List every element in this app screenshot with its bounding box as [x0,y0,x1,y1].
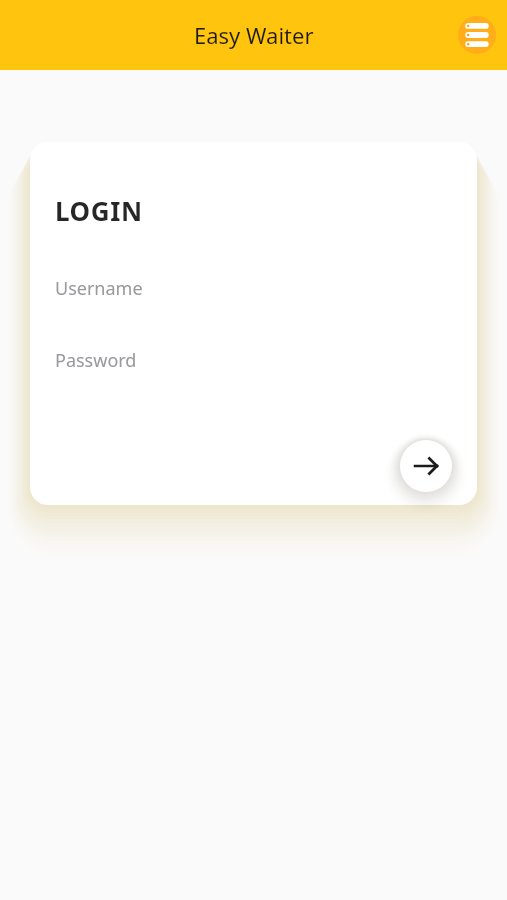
staticText: LOGIN [55,193,143,228]
button[interactable]: Password [30,343,477,377]
button[interactable]: Menu [458,16,496,54]
staticText: Password [55,348,137,373]
button[interactable]: Username [30,271,477,305]
staticText: Easy Waiter [194,20,314,50]
staticText: Username [55,276,143,301]
button[interactable]: Submit login [400,440,452,492]
